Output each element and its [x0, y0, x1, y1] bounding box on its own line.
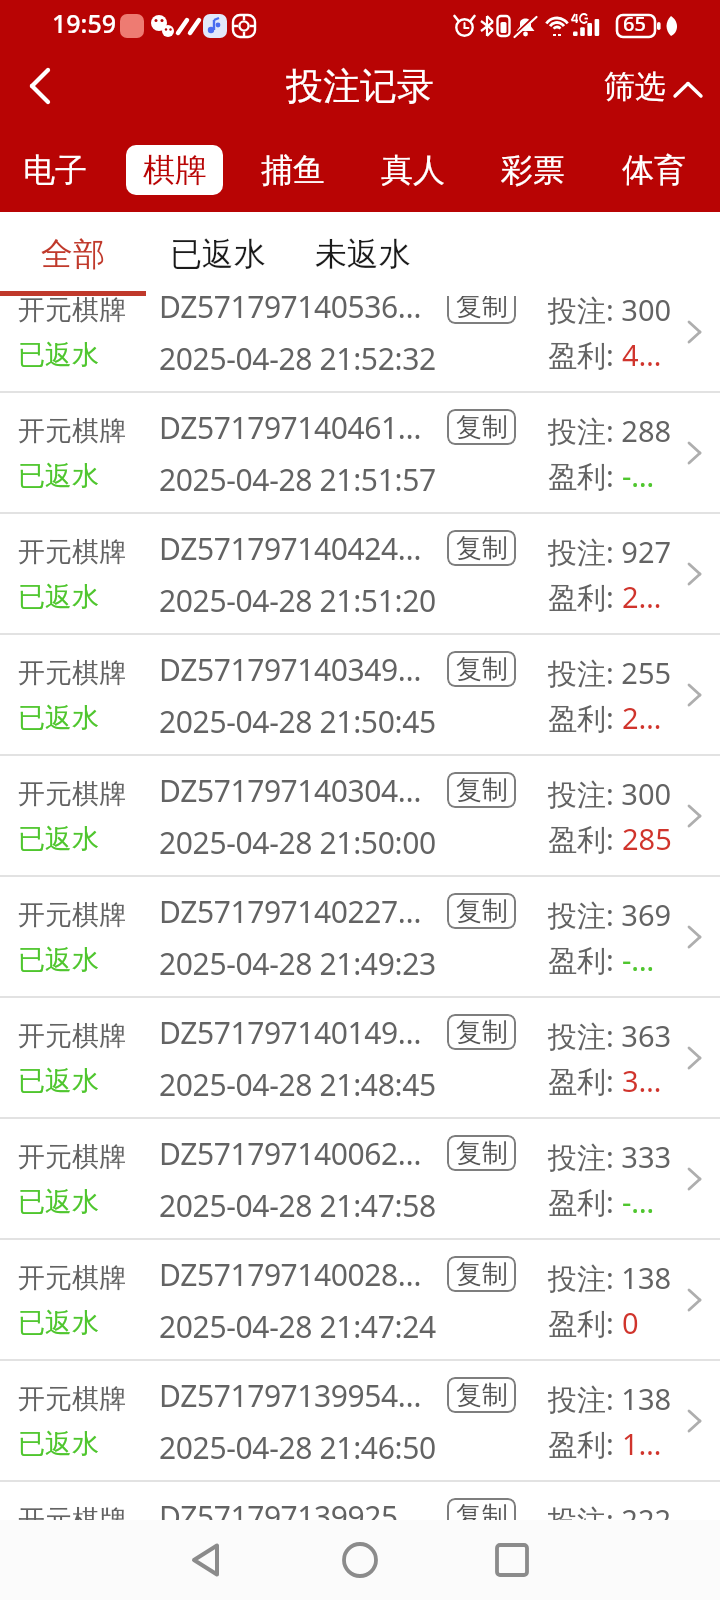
button[interactable]: 电子: [9, 145, 101, 195]
staticText: 盈利:: [548, 1303, 622, 1343]
button[interactable]: 复制: [447, 772, 516, 808]
staticText: DZ571797139954…: [159, 1375, 422, 1416]
button[interactable]: Recents: [472, 1520, 552, 1600]
staticText: 已返水: [18, 701, 99, 735]
staticText: 复制: [456, 411, 508, 444]
staticText: 0: [622, 1303, 639, 1342]
button[interactable]: 已返水: [145, 212, 290, 296]
staticText: -…: [622, 940, 655, 979]
staticText: DZ571797140227…: [159, 891, 422, 932]
button[interactable]: 开元棋牌: [0, 1482, 720, 1520]
staticText: -…: [622, 456, 655, 495]
button[interactable]: 开元棋牌: [0, 998, 720, 1117]
staticText: 盈利:: [548, 940, 622, 980]
button[interactable]: 开元棋牌: [0, 756, 720, 875]
button[interactable]: 开元棋牌: [0, 1240, 720, 1359]
button[interactable]: 棋牌: [126, 145, 223, 195]
staticText: 已返水: [18, 1064, 99, 1098]
staticText: 2025-04-28 21:51:20: [159, 580, 436, 621]
staticText: DZ571797140062…: [159, 1133, 422, 1174]
staticText: 复制: [456, 532, 508, 565]
staticText: 开元棋牌: [18, 296, 126, 327]
staticText: 2025-04-28 21:49:23: [159, 943, 436, 984]
staticText: 19:59: [52, 6, 117, 40]
staticText: 复制: [456, 1379, 508, 1412]
staticText: 2025-04-28 21:47:58: [159, 1185, 436, 1226]
button[interactable]: 复制: [447, 651, 516, 687]
button[interactable]: 复制: [447, 893, 516, 929]
button[interactable]: 开元棋牌: [0, 1119, 720, 1238]
button[interactable]: 复制: [447, 1377, 516, 1413]
button[interactable]: 复制: [447, 1256, 516, 1292]
staticText: 投注: 300: [548, 774, 672, 814]
button[interactable]: 复制: [447, 1498, 516, 1520]
staticText: 投注: 255: [548, 653, 672, 693]
staticText: 2…: [622, 698, 662, 737]
staticText: 未返水: [315, 234, 411, 274]
staticText: 复制: [456, 1016, 508, 1049]
staticText: 2025-04-28 21:47:24: [159, 1306, 436, 1347]
staticText: DZ571797140149…: [159, 1012, 422, 1053]
button[interactable]: 复制: [447, 1135, 516, 1171]
button[interactable]: 开元棋牌: [0, 514, 720, 633]
staticText: 电子: [23, 150, 87, 190]
staticText: 2025-04-28 21:52:32: [159, 338, 436, 379]
staticText: 已返水: [18, 580, 99, 614]
button[interactable]: 捕鱼: [247, 145, 339, 195]
staticText: 复制: [456, 1137, 508, 1170]
staticText: DZ571797139925…: [159, 1496, 422, 1520]
staticText: 复制: [456, 653, 508, 686]
button[interactable]: 体育: [608, 145, 700, 195]
button[interactable]: 未返水: [290, 212, 435, 296]
staticText: 盈利:: [548, 1061, 622, 1101]
staticText: 投注: 300: [548, 296, 672, 330]
button[interactable]: 开元棋牌: [0, 296, 720, 391]
staticText: 真人: [381, 150, 445, 190]
button[interactable]: 开元棋牌: [0, 635, 720, 754]
staticText: 已返水: [18, 943, 99, 977]
button[interactable]: Back: [166, 1520, 246, 1600]
staticText: 投注: 138: [548, 1258, 672, 1298]
staticText: -…: [622, 1182, 655, 1221]
staticText: 投注记录: [286, 63, 434, 110]
staticText: 彩票: [501, 150, 565, 190]
staticText: 2025-04-28 21:50:00: [159, 822, 436, 863]
staticText: 盈利:: [548, 819, 622, 859]
staticText: 投注: 369: [548, 895, 672, 935]
staticText: 开元棋牌: [18, 414, 126, 448]
staticText: 盈利:: [548, 698, 622, 738]
button[interactable]: 开元棋牌: [0, 393, 720, 512]
staticText: 盈利:: [548, 1424, 622, 1464]
button[interactable]: 复制: [447, 296, 516, 324]
button[interactable]: 全部: [0, 212, 145, 296]
button[interactable]: 彩票: [487, 145, 579, 195]
button[interactable]: 开元棋牌: [0, 1361, 720, 1480]
staticText: 已返水: [18, 822, 99, 856]
staticText: 开元棋牌: [18, 1140, 126, 1174]
staticText: 体育: [622, 150, 686, 190]
staticText: 开元棋牌: [18, 1261, 126, 1295]
button[interactable]: 真人: [367, 145, 459, 195]
button[interactable]: 复制: [447, 530, 516, 566]
button[interactable]: 复制: [447, 409, 516, 445]
staticText: 开元棋牌: [18, 777, 126, 811]
staticText: 投注: 138: [548, 1379, 672, 1419]
staticText: 2025-04-28 21:46:50: [159, 1427, 436, 1468]
staticText: 已返水: [18, 1427, 99, 1461]
button[interactable]: 筛选: [600, 67, 708, 106]
staticText: 4…: [622, 335, 662, 374]
button[interactable]: 开元棋牌: [0, 877, 720, 996]
staticText: 开元棋牌: [18, 535, 126, 569]
staticText: 已返水: [170, 234, 266, 274]
staticText: 复制: [456, 1258, 508, 1291]
button[interactable]: Back: [14, 60, 66, 112]
staticText: 开元棋牌: [18, 1503, 126, 1520]
staticText: 285: [622, 819, 672, 858]
staticText: 投注: 288: [548, 411, 672, 451]
staticText: 捕鱼: [261, 150, 325, 190]
staticText: DZ571797140304…: [159, 770, 422, 811]
button[interactable]: 复制: [447, 1014, 516, 1050]
button[interactable]: Home: [320, 1520, 400, 1600]
staticText: 筛选: [604, 67, 666, 106]
staticText: DZ571797140536…: [159, 296, 422, 327]
